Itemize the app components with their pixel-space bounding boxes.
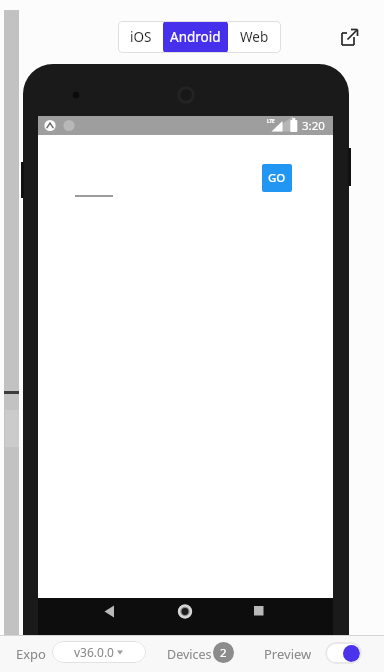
button[interactable] — [338, 25, 362, 49]
button[interactable]: Web — [228, 21, 281, 53]
button[interactable]: GO — [262, 164, 292, 192]
staticText: LTE — [267, 118, 275, 124]
staticText: Expo — [16, 645, 46, 663]
staticText: Web — [240, 28, 269, 46]
button[interactable]: 2 — [213, 642, 234, 663]
staticText: 3:20 — [302, 118, 325, 134]
button[interactable] — [95, 600, 125, 624]
staticText: 2 — [220, 645, 227, 661]
button[interactable]: iOS — [118, 21, 163, 53]
staticText: v36.0.0 — [74, 644, 114, 660]
staticText: Devices — [167, 646, 212, 663]
staticText: Preview — [264, 645, 312, 663]
button[interactable] — [245, 600, 275, 624]
button[interactable]: v36.0.0 — [52, 641, 146, 663]
button[interactable]: Android — [163, 21, 228, 53]
staticText: iOS — [130, 28, 152, 46]
staticText: Android — [170, 28, 221, 46]
button[interactable] — [170, 600, 200, 624]
staticText: GO — [268, 170, 286, 186]
button[interactable] — [325, 642, 362, 664]
